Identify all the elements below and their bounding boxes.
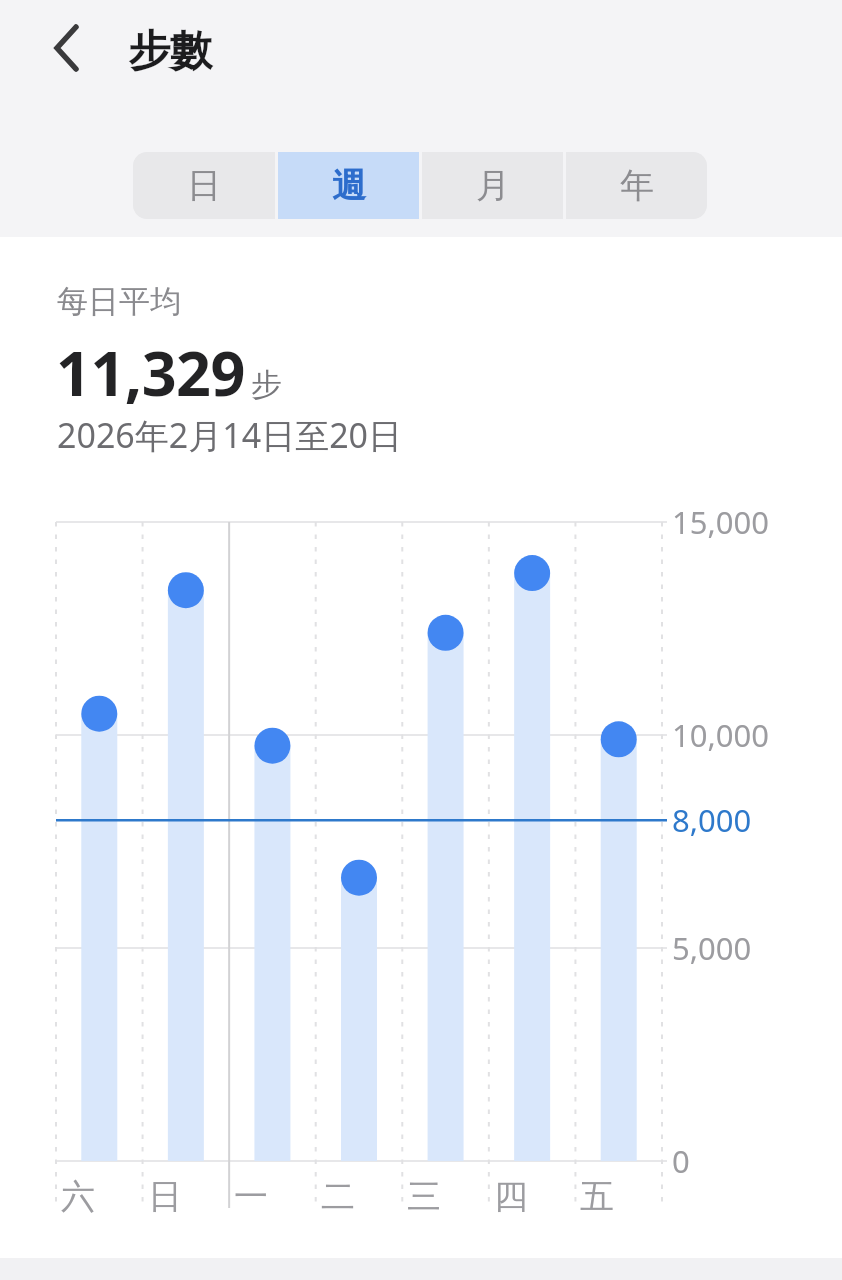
- staticText: 0: [672, 1140, 690, 1182]
- staticText: 三: [407, 1175, 441, 1218]
- staticText: 步數: [128, 25, 212, 78]
- staticText: 11,329: [56, 331, 245, 414]
- button[interactable]: 日: [133, 152, 275, 219]
- staticText: 日: [148, 1175, 182, 1218]
- staticText: 一: [234, 1175, 268, 1218]
- staticText: 年: [620, 164, 654, 207]
- staticText: 週: [332, 164, 366, 207]
- staticText: 步: [251, 365, 282, 404]
- staticText: 2026年2月14日至20日: [57, 412, 403, 458]
- staticText: 每日平均: [57, 282, 181, 321]
- button[interactable]: 月: [422, 152, 563, 219]
- button[interactable]: 週: [278, 152, 419, 219]
- staticText: 五: [580, 1175, 614, 1218]
- staticText: 15,000: [672, 501, 769, 543]
- staticText: 六: [61, 1175, 95, 1218]
- staticText: 二: [321, 1175, 355, 1218]
- staticText: 月: [476, 164, 510, 207]
- staticText: 5,000: [672, 927, 752, 969]
- button[interactable]: [42, 14, 98, 80]
- staticText: 10,000: [672, 714, 769, 756]
- staticText: 四: [494, 1175, 528, 1218]
- staticText: 8,000: [672, 799, 752, 841]
- button[interactable]: 年: [566, 152, 707, 219]
- staticText: 日: [187, 164, 221, 207]
